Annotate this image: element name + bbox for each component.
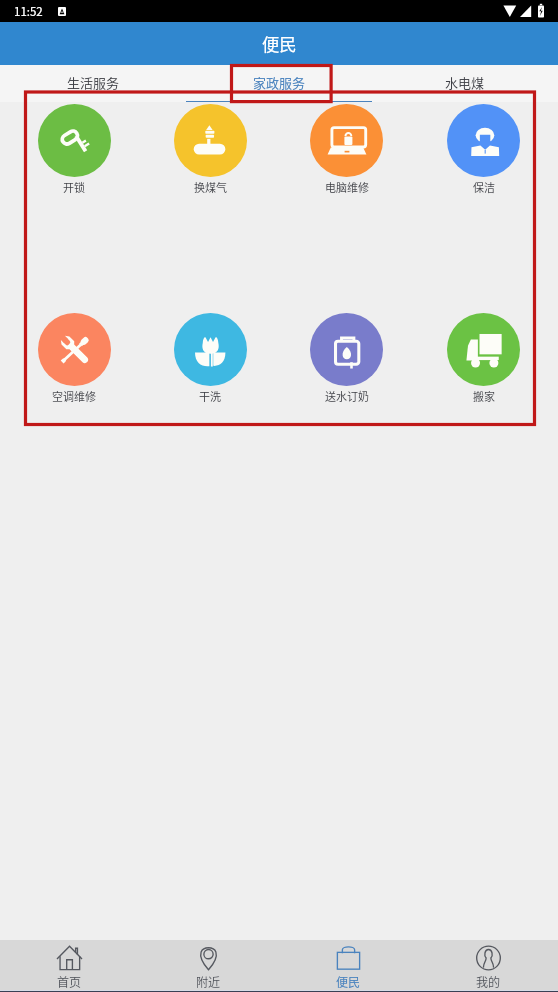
staticText: 送水订奶 xyxy=(325,388,369,404)
button[interactable]: 家政服务 xyxy=(186,65,372,102)
staticText: 电脑维修 xyxy=(325,179,369,195)
button[interactable]: 电脑维修 xyxy=(278,104,415,195)
staticText: 便民 xyxy=(262,31,297,56)
button[interactable]: 搬家 xyxy=(415,313,552,404)
button[interactable]: 换煤气 xyxy=(142,104,278,195)
button[interactable]: 水电煤 xyxy=(372,65,558,102)
staticText: 干洗 xyxy=(199,388,221,404)
button[interactable]: 送水订奶 xyxy=(278,313,415,404)
staticText: 便民 xyxy=(336,973,361,991)
staticText: 家政服务 xyxy=(253,73,306,92)
button[interactable]: 首页 xyxy=(0,940,139,990)
button[interactable]: 生活服务 xyxy=(0,65,186,102)
button[interactable]: 保洁 xyxy=(415,104,552,195)
button[interactable]: 干洗 xyxy=(142,313,278,404)
staticText: 搬家 xyxy=(473,388,495,404)
button[interactable]: 附近 xyxy=(139,940,278,990)
staticText: 开锁 xyxy=(63,179,85,195)
button[interactable]: 空调维修 xyxy=(6,313,142,404)
staticText: 附近 xyxy=(196,973,221,991)
staticText: 换煤气 xyxy=(194,179,227,195)
staticText: 首页 xyxy=(57,973,82,991)
staticText: 生活服务 xyxy=(67,73,120,92)
staticText: 水电煤 xyxy=(445,73,485,92)
staticText: 保洁 xyxy=(473,179,495,195)
button[interactable]: 我的 xyxy=(418,940,558,990)
staticText: 11:52 xyxy=(14,3,43,20)
staticText: 空调维修 xyxy=(52,388,96,404)
staticText: 我的 xyxy=(476,973,501,991)
button[interactable]: 开锁 xyxy=(6,104,142,195)
button[interactable]: 便民 xyxy=(278,940,418,990)
